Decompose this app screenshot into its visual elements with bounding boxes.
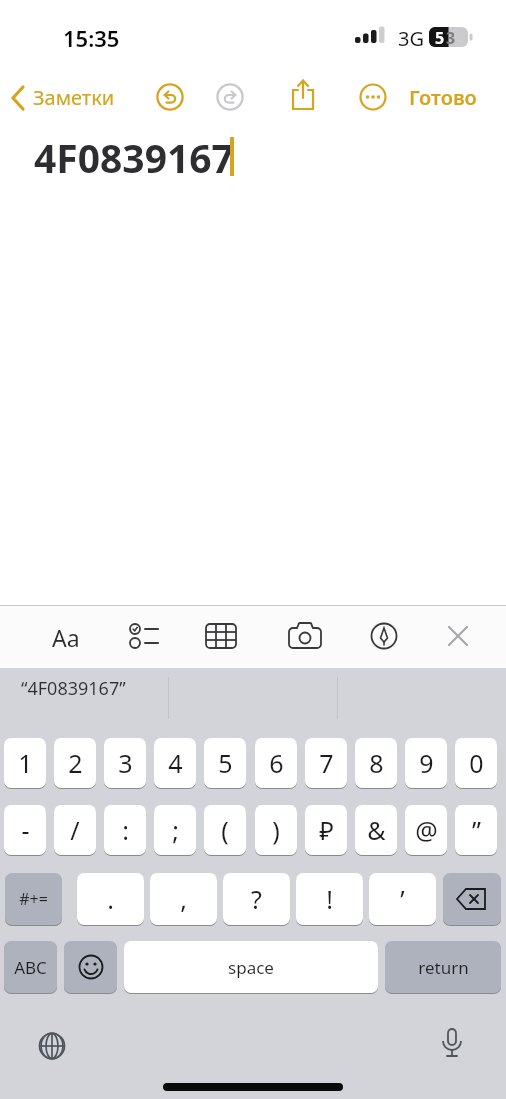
staticText: 4F0839167 <box>34 131 234 184</box>
staticText: , <box>180 882 187 916</box>
staticText: 8 <box>369 746 384 780</box>
staticText: “4F0839167” <box>21 676 126 701</box>
staticText: ! <box>326 882 333 916</box>
staticText: ) <box>272 813 280 847</box>
staticText: #+= <box>19 888 48 910</box>
staticText: 3 <box>446 27 456 49</box>
staticText: : <box>122 813 129 847</box>
staticText: 9 <box>419 746 434 780</box>
staticText: @ <box>415 813 438 847</box>
staticText: ( <box>221 813 229 847</box>
staticText: ₽ <box>319 813 334 847</box>
staticText: . <box>107 882 114 916</box>
staticText: space <box>228 956 274 979</box>
staticText: return <box>418 956 469 979</box>
staticText: 7 <box>319 746 334 780</box>
staticText: ? <box>251 882 262 916</box>
staticText: Заметки <box>33 84 115 111</box>
staticText: 4 <box>168 746 183 780</box>
staticText: 5 <box>218 746 233 780</box>
staticText: 3 <box>118 746 133 780</box>
staticText: & <box>367 813 386 847</box>
staticText: ’ <box>400 882 405 916</box>
staticText: Aa <box>52 622 80 653</box>
staticText: 2 <box>68 746 83 780</box>
staticText: - <box>21 813 30 847</box>
staticText: 1 <box>18 746 33 780</box>
staticText: ; <box>172 813 179 847</box>
staticText: ABC <box>14 956 47 979</box>
staticText: 0 <box>469 746 484 780</box>
staticText: 3G <box>398 25 424 52</box>
staticText: 5 <box>435 27 445 49</box>
staticText: / <box>70 813 80 847</box>
staticText: 6 <box>269 746 284 780</box>
staticText: 15:35 <box>63 23 120 53</box>
staticText: ” <box>472 813 481 847</box>
staticText: Готово <box>409 84 477 111</box>
